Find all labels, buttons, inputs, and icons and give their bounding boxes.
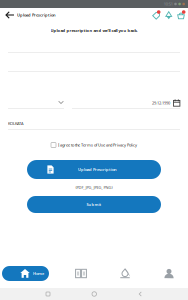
button[interactable]: Lab Tests bbox=[69, 266, 93, 281]
staticText: Home bbox=[33, 271, 44, 276]
button[interactable]: Profile bbox=[157, 266, 181, 281]
button[interactable]: Offers bbox=[151, 9, 161, 20]
button[interactable]: Notifications bbox=[164, 9, 173, 20]
staticText: Upload prescription and we'll call you b… bbox=[50, 28, 137, 33]
staticText: Upload Prescription bbox=[17, 12, 56, 18]
staticText: I agree to the Terms of Use and Privacy … bbox=[58, 142, 137, 148]
button[interactable]: Back bbox=[0, 8, 17, 22]
staticText: Upload Prescription bbox=[78, 167, 117, 172]
staticText: Submit bbox=[86, 202, 101, 207]
staticText: 29-12-1990 bbox=[152, 100, 170, 106]
button[interactable]: Blood Bank bbox=[113, 266, 137, 281]
button[interactable]: Home bbox=[2, 266, 49, 281]
button[interactable]: Submit bbox=[27, 196, 161, 213]
staticText: (PDF, JPG, JPEG, PNG) bbox=[75, 185, 112, 190]
staticText: 10:51 bbox=[164, 1, 173, 7]
button[interactable]: Cart bbox=[176, 9, 186, 20]
staticText: KOLKATA bbox=[8, 121, 24, 126]
button[interactable]: Upload Prescription bbox=[27, 160, 161, 179]
